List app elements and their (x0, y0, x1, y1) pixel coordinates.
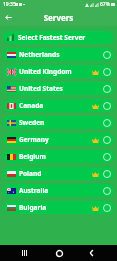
button[interactable]: Recents (17, 245, 33, 261)
staticText: United Kingdom (19, 67, 72, 76)
other: Select Sweden (102, 118, 111, 127)
staticText: Belgium (19, 152, 46, 161)
staticText: 19:35 (3, 1, 16, 8)
button[interactable]: United States (3, 82, 114, 95)
other: Select United Kingdom (102, 67, 111, 76)
button[interactable]: Belgium (3, 150, 114, 163)
staticText: Germany (19, 135, 49, 144)
staticText: Canada (19, 101, 44, 110)
staticText: Poland (19, 169, 42, 178)
button[interactable]: Back (2, 11, 15, 24)
button[interactable]: Bulgaria (3, 201, 114, 214)
button[interactable]: Home (51, 245, 67, 261)
button[interactable]: Select Fastest Server (3, 31, 114, 44)
other: Select Bulgaria (102, 203, 111, 212)
button[interactable]: Canada (3, 99, 114, 112)
staticText: Select Fastest Server (18, 33, 86, 42)
staticText: Bulgaria (19, 203, 47, 212)
other: Select Canada (102, 101, 111, 110)
other: Select Germany (102, 135, 111, 144)
staticText: 67% (100, 1, 110, 8)
button[interactable]: Germany (3, 133, 114, 146)
other: Select Australia (102, 186, 111, 195)
other: Select United States (102, 84, 111, 93)
other: Select Belgium (102, 152, 111, 161)
staticText: United States (19, 84, 63, 93)
button[interactable]: Sweden (3, 116, 114, 129)
staticText: Sweden (19, 118, 45, 127)
button[interactable]: Australia (3, 184, 114, 197)
staticText: Netherlands (19, 50, 60, 59)
button[interactable]: Back (84, 245, 100, 261)
button[interactable]: Netherlands (3, 48, 114, 61)
button[interactable]: United Kingdom (3, 65, 114, 78)
button[interactable]: Poland (3, 167, 114, 180)
other: Select Netherlands (102, 50, 111, 59)
other: Select Poland (102, 169, 111, 178)
staticText: Servers (0, 12, 117, 23)
staticText: Australia (19, 186, 49, 195)
